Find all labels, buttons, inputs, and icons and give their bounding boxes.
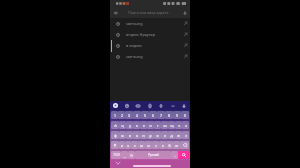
button[interactable]: ш (161, 121, 168, 129)
button[interactable]: ф (111, 131, 119, 139)
button[interactable]: т (152, 141, 159, 149)
button[interactable]: н (147, 121, 154, 129)
staticText: 3 (128, 113, 130, 118)
staticText: д (170, 133, 173, 138)
staticText: 0 (184, 113, 186, 118)
staticText: е (143, 123, 145, 128)
staticText: я (121, 143, 123, 148)
staticText: ж (177, 133, 180, 138)
staticText: з (178, 123, 180, 128)
button[interactable]: ц (119, 121, 126, 129)
button[interactable]: о (154, 131, 161, 139)
staticText: р (149, 133, 152, 138)
button[interactable]: м (138, 141, 145, 149)
button[interactable]: Voice search (180, 7, 190, 18)
button[interactable]: Stickers (147, 103, 153, 109)
button[interactable]: samsung (110, 51, 190, 62)
button[interactable]: ч (125, 141, 131, 149)
staticText: яндекс браузер (126, 32, 156, 37)
button[interactable]: Search (178, 151, 189, 159)
staticText: щ (170, 123, 174, 128)
staticText: ю (175, 143, 178, 148)
button[interactable]: GIF (135, 103, 141, 109)
staticText: ы (121, 133, 124, 138)
button[interactable]: Assistant (113, 103, 118, 108)
button[interactable]: р (147, 131, 154, 139)
staticText: т (155, 143, 157, 148)
button[interactable]: у (126, 121, 133, 129)
button[interactable]: и (145, 141, 152, 149)
button[interactable]: б (166, 141, 173, 149)
button[interactable]: е (140, 121, 147, 129)
button[interactable]: п (140, 131, 147, 139)
button[interactable]: в яндекс (110, 40, 190, 51)
button[interactable]: 2 (118, 111, 125, 119)
button[interactable]: яндекс браузер (110, 29, 190, 40)
button[interactable]: 4 (133, 111, 141, 119)
staticText: а (136, 133, 138, 138)
button[interactable]: л (161, 131, 168, 139)
button[interactable]: 0 (181, 111, 189, 119)
button[interactable]: д (168, 131, 175, 139)
staticText: ц (121, 123, 124, 128)
button[interactable]: щ (168, 121, 175, 129)
staticText: Русский (148, 153, 159, 157)
button[interactable]: х (182, 121, 189, 129)
staticText: ф (114, 133, 117, 138)
button[interactable]: Emoji (128, 151, 135, 159)
staticText: и (147, 143, 150, 148)
button[interactable]: Back (110, 7, 121, 18)
button[interactable]: ж (175, 131, 182, 139)
staticText: 2 (121, 113, 123, 118)
staticText: в яндекс (126, 43, 143, 48)
button[interactable]: Shift (111, 141, 119, 149)
button[interactable]: г (154, 121, 161, 129)
button[interactable]: а (133, 131, 140, 139)
staticText: к (136, 123, 138, 128)
staticText: , (124, 153, 126, 158)
button[interactable]: Clipboard (124, 103, 130, 109)
staticText: с (134, 143, 136, 148)
button[interactable]: Backspace (180, 141, 189, 149)
button[interactable]: ь (159, 141, 166, 149)
staticText: х (185, 123, 187, 128)
button[interactable]: 6 (149, 111, 157, 119)
staticText: 7 (160, 113, 162, 118)
button[interactable]: 1 (111, 111, 118, 119)
button[interactable]: 7 (157, 111, 165, 119)
staticText: ч (127, 143, 129, 148)
staticText: й (114, 123, 117, 128)
staticText: ь (162, 143, 164, 148)
button[interactable]: samsung (110, 18, 190, 29)
staticText: 1 (114, 113, 116, 118)
button[interactable]: с (131, 141, 138, 149)
button[interactable]: ы (119, 131, 126, 139)
staticText: samsung (126, 54, 143, 59)
staticText: у (129, 123, 131, 128)
staticText: samsung (126, 21, 143, 26)
button[interactable]: 9 (173, 111, 181, 119)
button[interactable]: я (119, 141, 125, 149)
staticText: 8 (168, 113, 170, 118)
button[interactable]: й (111, 121, 119, 129)
staticText: в (129, 133, 131, 138)
staticText: п (142, 133, 145, 138)
staticText: 6 (152, 113, 154, 118)
button[interactable]: Settings (158, 103, 164, 109)
button[interactable]: з (175, 121, 182, 129)
button[interactable]: ю (173, 141, 180, 149)
button[interactable]: ?123 (111, 151, 121, 159)
staticText: 9 (176, 113, 178, 118)
staticText: м (140, 143, 143, 148)
button[interactable]: . (171, 151, 178, 159)
button[interactable]: Русский (135, 151, 171, 159)
button[interactable]: к (133, 121, 140, 129)
button[interactable]: , (121, 151, 128, 159)
button[interactable]: в (126, 131, 133, 139)
button[interactable]: Voice input (181, 103, 187, 109)
button[interactable]: э (182, 131, 189, 139)
button[interactable]: More options (170, 103, 176, 109)
button[interactable]: 5 (141, 111, 149, 119)
button[interactable]: 3 (125, 111, 133, 119)
button[interactable]: 8 (165, 111, 173, 119)
